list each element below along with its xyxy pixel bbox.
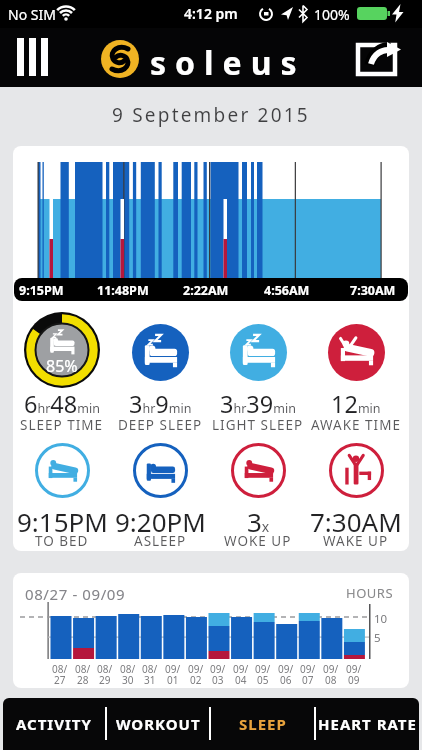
button[interactable]: SLEEP [211,698,314,750]
staticText: 09/ [255,662,271,674]
staticText: 02 [190,673,202,685]
button[interactable]: HEART RATE [316,698,419,750]
staticText: 30 [122,673,134,685]
staticText: ASLEEP [134,532,187,550]
staticText: 08/ [142,662,158,674]
staticText: 09/ [188,662,204,674]
staticText: No SIM [8,5,56,24]
staticText: 09/ [165,662,181,674]
staticText: 9:20PM [115,504,206,539]
staticText: 5 [374,630,381,646]
staticText: ACTIVITY [16,714,92,734]
staticText: 100% [314,5,350,24]
staticText: 29 [99,673,111,685]
staticText: 08 [325,673,337,685]
staticText: 08/27 - 09/09 [25,584,126,604]
staticText: 04 [235,673,247,685]
staticText: 06 [280,673,292,685]
staticText: DEEP SLEEP [118,416,203,434]
button[interactable] [8,32,56,82]
staticText: 03 [212,673,224,685]
staticText: 01 [167,673,179,685]
staticText: LIGHT SLEEP [212,416,304,434]
staticText: AWAKE TIME [311,416,401,434]
staticText: 09/ [210,662,226,674]
staticText: 27 [54,673,66,685]
staticText: 09/ [233,662,249,674]
staticText: SLEEP [239,714,287,734]
staticText: 09 [348,673,360,685]
staticText: 08/ [75,662,91,674]
staticText: 85% [46,355,78,375]
button[interactable]: WORKOUT [107,698,209,750]
staticText: HEART RATE [318,714,417,734]
staticText: 08/ [97,662,113,674]
staticText: WAKE UP [323,532,389,550]
staticText: 11:48PM [97,282,149,299]
staticText: 09/ [323,662,339,674]
staticText: 31 [144,673,156,685]
staticText: SLEEP TIME [20,416,104,434]
staticText: 7:30AM [310,504,402,539]
staticText: WORKOUT [116,714,201,734]
staticText: 08/ [52,662,68,674]
staticText: 6hr48min [24,388,100,420]
staticText: WOKE UP [224,532,292,550]
staticText: 9 September 2015 [112,102,310,128]
button[interactable] [352,34,408,82]
staticText: 10 [374,611,388,627]
staticText: 05 [257,673,269,685]
staticText: 09/ [346,662,362,674]
staticText: 7:30AM [350,282,396,299]
staticText: 9:15PM [17,504,108,539]
staticText: 09/ [278,662,294,674]
staticText: 08/ [120,662,136,674]
button[interactable]: ACTIVITY [3,698,105,750]
staticText: HOURS [346,584,394,602]
staticText: TO BED [35,532,89,550]
staticText: 09/ [300,662,316,674]
staticText: 2:22AM [183,282,229,299]
staticText: 3hr9min [129,388,192,420]
staticText: 9:15PM [19,282,64,299]
staticText: 12min [331,388,381,420]
staticText: 28 [77,673,89,685]
staticText: soleus [150,41,306,77]
staticText: 4:12 pm [184,4,238,23]
staticText: 3x [247,504,270,539]
staticText: 4:56AM [264,282,310,299]
staticText: 07 [302,673,314,685]
staticText: 3hr39min [220,388,296,420]
